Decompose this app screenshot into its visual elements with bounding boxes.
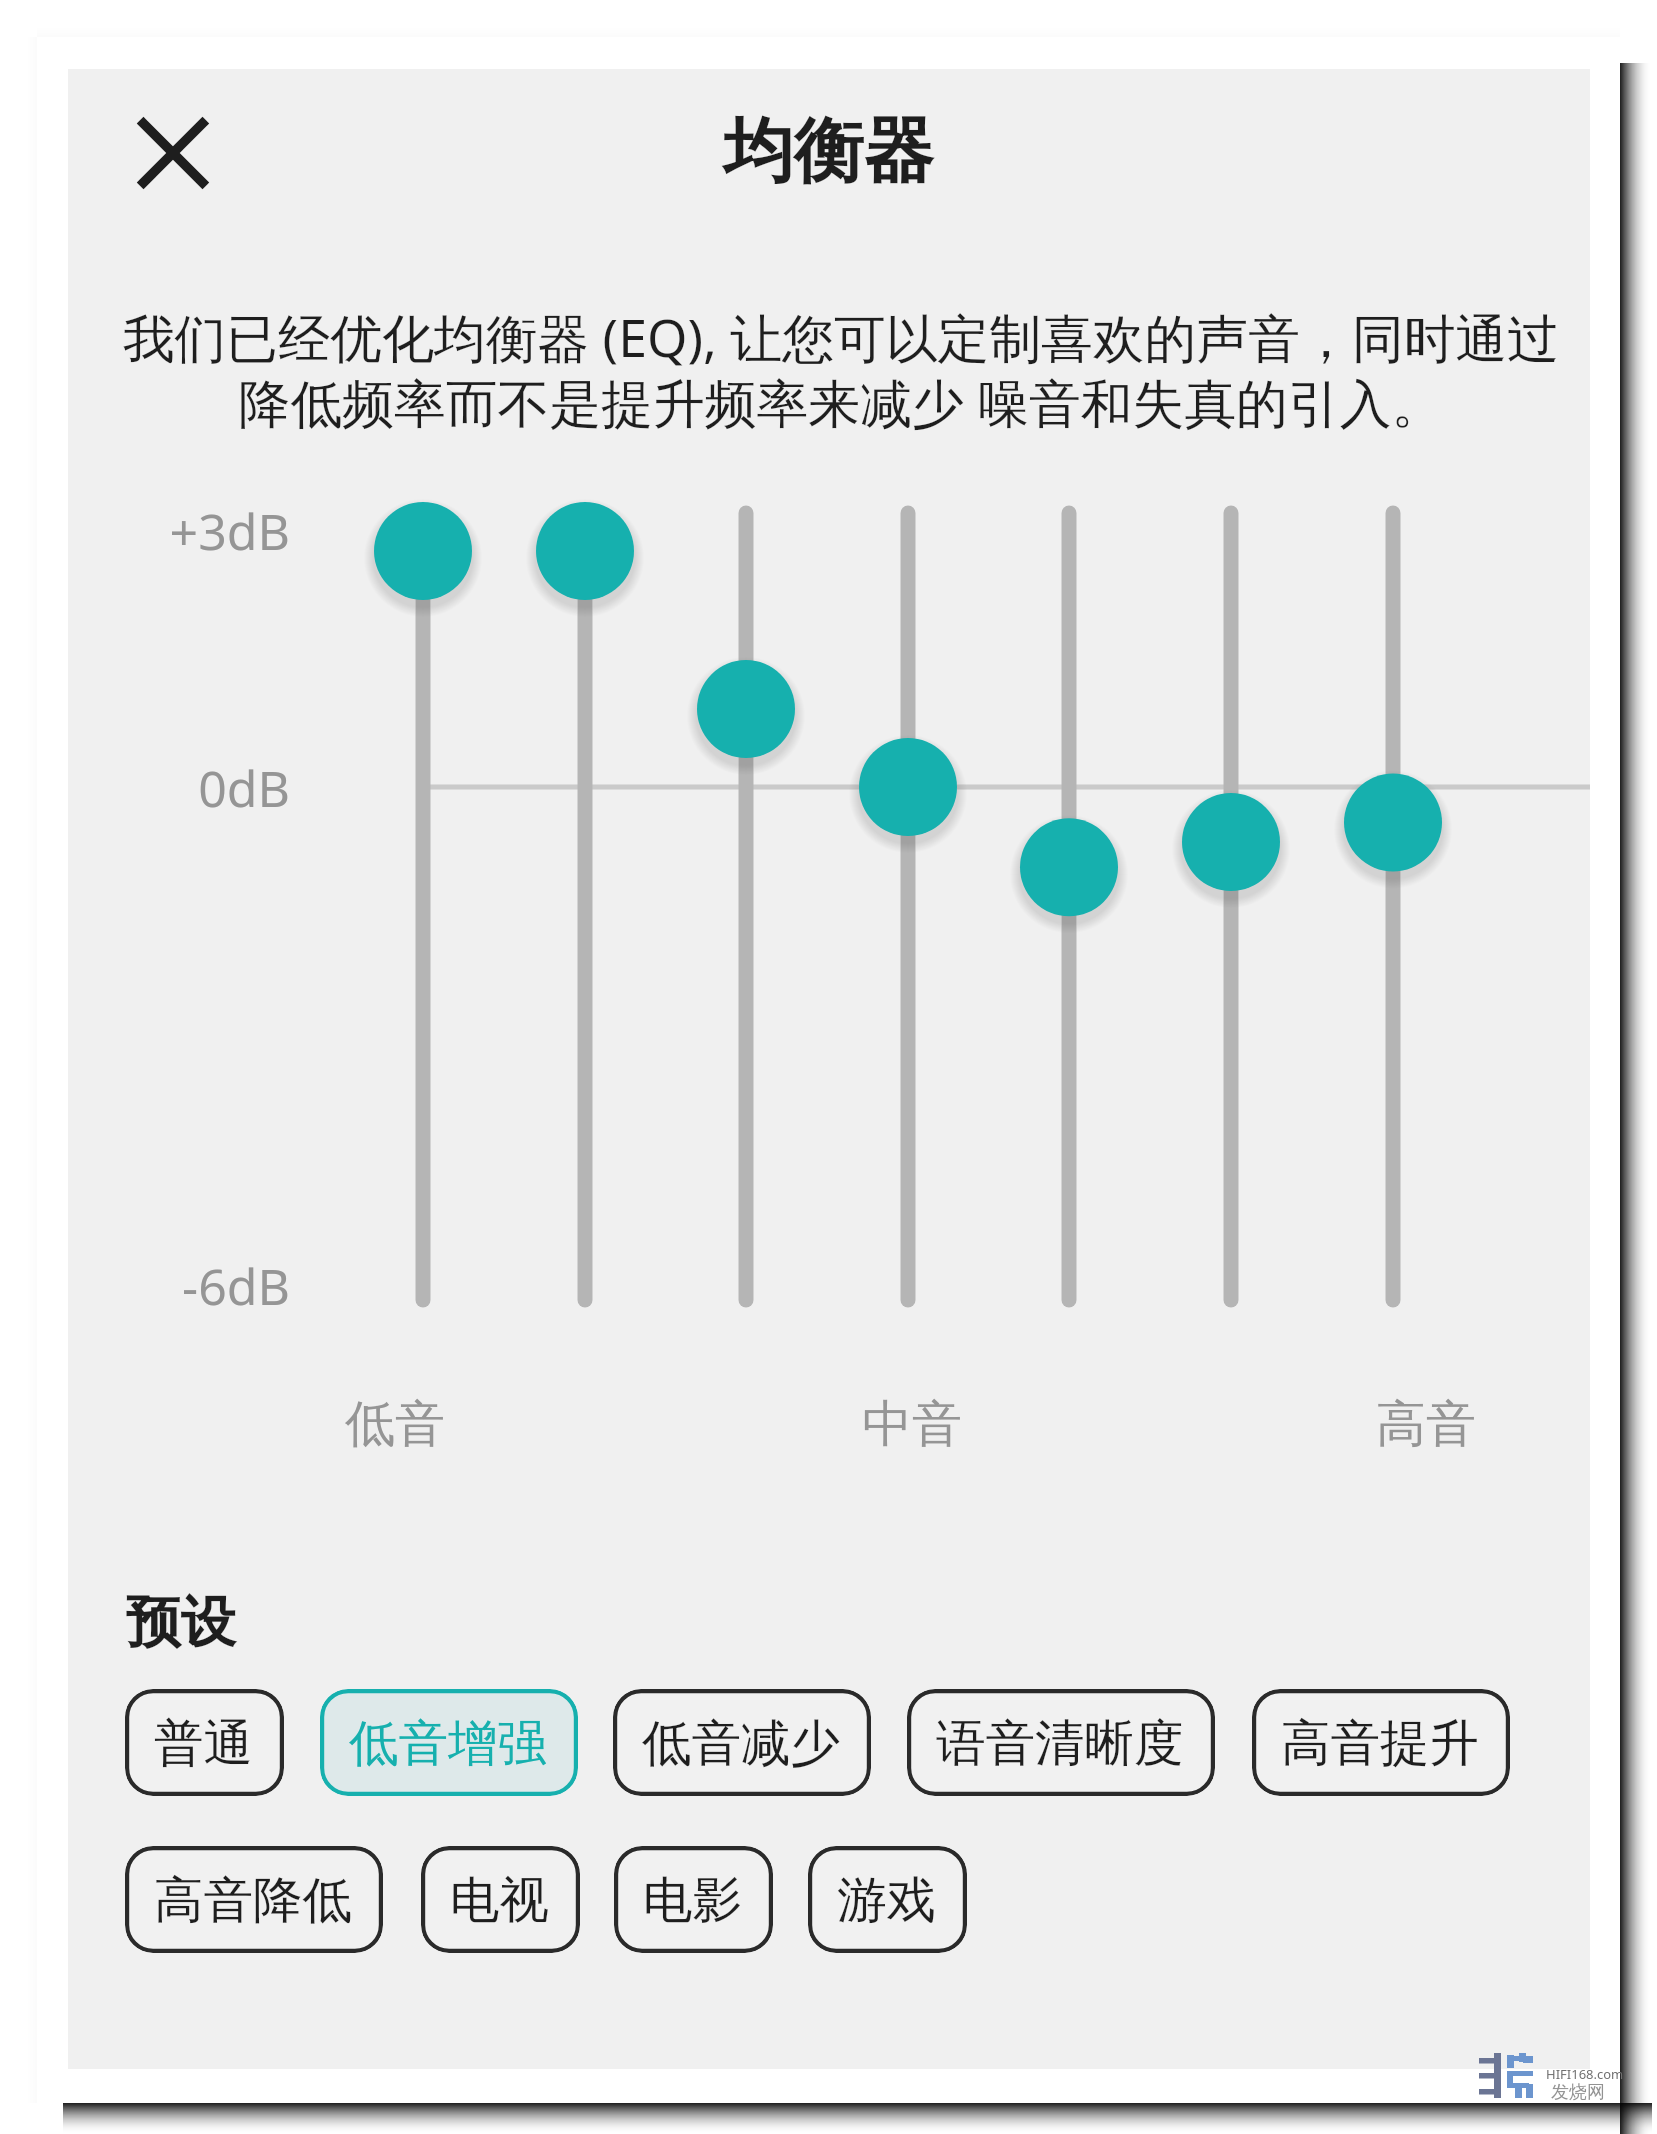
- staticText: 低音减少: [642, 1712, 840, 1774]
- button[interactable]: 普通: [125, 1689, 284, 1796]
- button[interactable]: 60 Hz band level: [343, 460, 503, 1360]
- staticText: 均衡器: [0, 108, 1657, 196]
- button[interactable]: 语音清晰度: [907, 1689, 1215, 1796]
- button[interactable]: 游戏: [808, 1846, 967, 1953]
- staticText: HIFI168.com: [1546, 2065, 1624, 2083]
- button[interactable]: 高音降低: [125, 1846, 383, 1953]
- button[interactable]: 电视: [421, 1846, 580, 1953]
- button[interactable]: 6 kHz band level: [1148, 460, 1308, 1360]
- staticText: 游戏: [837, 1869, 936, 1931]
- staticText: 高音: [1351, 1393, 1501, 1456]
- staticText: 发烧网: [1551, 2081, 1605, 2104]
- button[interactable]: 2.4 kHz band level: [987, 460, 1147, 1360]
- button[interactable]: 150 Hz band level: [504, 460, 664, 1360]
- staticText: 高音降低: [154, 1869, 352, 1931]
- button[interactable]: 低音增强: [320, 1689, 578, 1796]
- staticText: 语音清晰度: [936, 1712, 1184, 1774]
- staticText: 我们已经优化均衡器 (EQ), 让您可以定制喜欢的声音，同时通过 降低频率而不是…: [80, 302, 1602, 437]
- staticText: 低音: [320, 1393, 470, 1456]
- staticText: 0dB: [130, 754, 290, 822]
- button[interactable]: 低音减少: [613, 1689, 871, 1796]
- button[interactable]: 400 Hz band level: [665, 460, 825, 1360]
- staticText: 中音: [837, 1393, 987, 1456]
- button[interactable]: 电影: [614, 1846, 773, 1953]
- button[interactable]: Close: [110, 90, 236, 216]
- staticText: 高音提升: [1281, 1712, 1479, 1774]
- staticText: 低音增强: [349, 1712, 547, 1774]
- staticText: 普通: [154, 1712, 253, 1774]
- staticText: 预设: [126, 1588, 236, 1657]
- staticText: 电视: [450, 1869, 549, 1931]
- staticText: -6dB: [130, 1252, 290, 1320]
- button[interactable]: 1 kHz band level: [826, 460, 986, 1360]
- button[interactable]: 高音提升: [1252, 1689, 1510, 1796]
- button[interactable]: 15 kHz band level: [1309, 460, 1469, 1360]
- staticText: 电影: [643, 1869, 742, 1931]
- staticText: +3dB: [130, 497, 290, 565]
